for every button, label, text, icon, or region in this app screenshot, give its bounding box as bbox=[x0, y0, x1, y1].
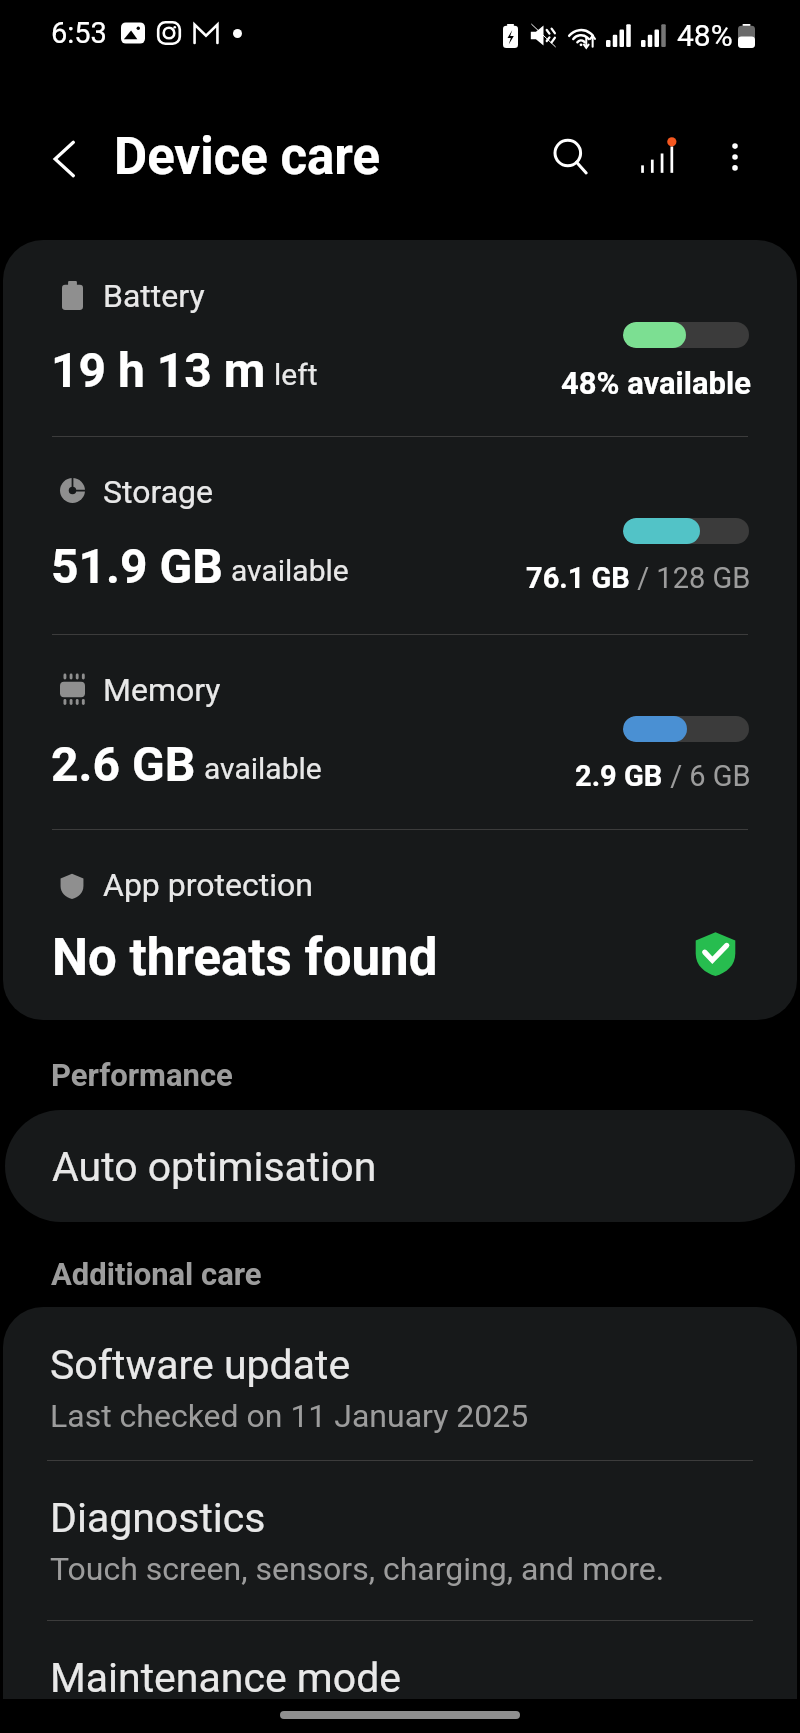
staticText: Last checked on 11 January 2025 bbox=[50, 1397, 529, 1435]
staticText: Performance bbox=[51, 1057, 233, 1093]
button[interactable]: Memory bbox=[3, 634, 797, 830]
button[interactable]: Search bbox=[538, 124, 604, 190]
button[interactable]: Performance report bbox=[624, 124, 690, 190]
staticText: Additional care bbox=[51, 1256, 262, 1292]
staticText: 19 h 13 m bbox=[51, 342, 266, 398]
staticText: Software update bbox=[50, 1341, 351, 1389]
button[interactable]: Diagnostics bbox=[3, 1460, 797, 1613]
staticText: Memory bbox=[103, 671, 221, 709]
staticText: Device care bbox=[114, 127, 381, 187]
staticText: Battery bbox=[103, 277, 205, 315]
staticText: / 6 GB bbox=[663, 759, 751, 793]
button[interactable]: More options bbox=[702, 124, 768, 190]
staticText: 48% bbox=[677, 18, 733, 53]
staticText: Touch screen, sensors, charging, and mor… bbox=[50, 1550, 665, 1588]
staticText: available bbox=[231, 553, 349, 588]
button[interactable]: Auto optimisation bbox=[5, 1110, 795, 1222]
staticText: No threats found bbox=[52, 928, 438, 988]
button[interactable]: Battery bbox=[3, 240, 797, 436]
button[interactable]: Maintenance mode bbox=[3, 1620, 797, 1699]
staticText: 2.6 GB bbox=[51, 736, 196, 792]
staticText: Maintenance mode bbox=[50, 1654, 402, 1699]
button[interactable]: Storage bbox=[3, 436, 797, 632]
staticText: available bbox=[204, 751, 322, 786]
staticText: 51.9 GB bbox=[51, 538, 223, 594]
staticText: / 128 GB bbox=[630, 561, 751, 595]
staticText: Diagnostics bbox=[50, 1494, 266, 1542]
staticText: 76.1 GB bbox=[526, 561, 630, 595]
staticText: Storage bbox=[103, 473, 213, 511]
button[interactable]: Back bbox=[33, 127, 97, 191]
staticText: 6:53 bbox=[51, 16, 107, 50]
button[interactable]: Software update bbox=[3, 1307, 797, 1460]
staticText: 48% available bbox=[561, 365, 751, 401]
staticText: left bbox=[274, 357, 318, 392]
staticText: App protection bbox=[103, 866, 313, 904]
staticText: Auto optimisation bbox=[52, 1143, 377, 1191]
staticText: 2.9 GB bbox=[575, 759, 663, 793]
button[interactable]: App protection bbox=[3, 829, 797, 1020]
